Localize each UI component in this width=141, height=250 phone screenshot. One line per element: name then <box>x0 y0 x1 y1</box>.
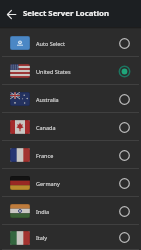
button[interactable]: India <box>0 197 141 225</box>
staticText: Germany <box>36 180 60 187</box>
button[interactable]: Italy <box>0 225 141 250</box>
staticText: India <box>36 208 50 215</box>
button[interactable] <box>0 3 22 25</box>
staticText: Canada <box>36 124 56 131</box>
staticText: France <box>36 152 54 159</box>
button[interactable]: Canada <box>0 113 141 141</box>
staticText: Australia <box>36 96 59 103</box>
button[interactable]: Australia <box>0 85 141 113</box>
button[interactable]: United States <box>0 57 141 85</box>
staticText: Italy <box>36 234 48 241</box>
button[interactable]: Auto Select <box>0 29 141 57</box>
staticText: United States <box>36 68 71 75</box>
staticText: Select Server Location <box>23 8 109 19</box>
button[interactable]: Germany <box>0 169 141 197</box>
button[interactable]: France <box>0 141 141 169</box>
staticText: Auto Select <box>36 40 65 47</box>
